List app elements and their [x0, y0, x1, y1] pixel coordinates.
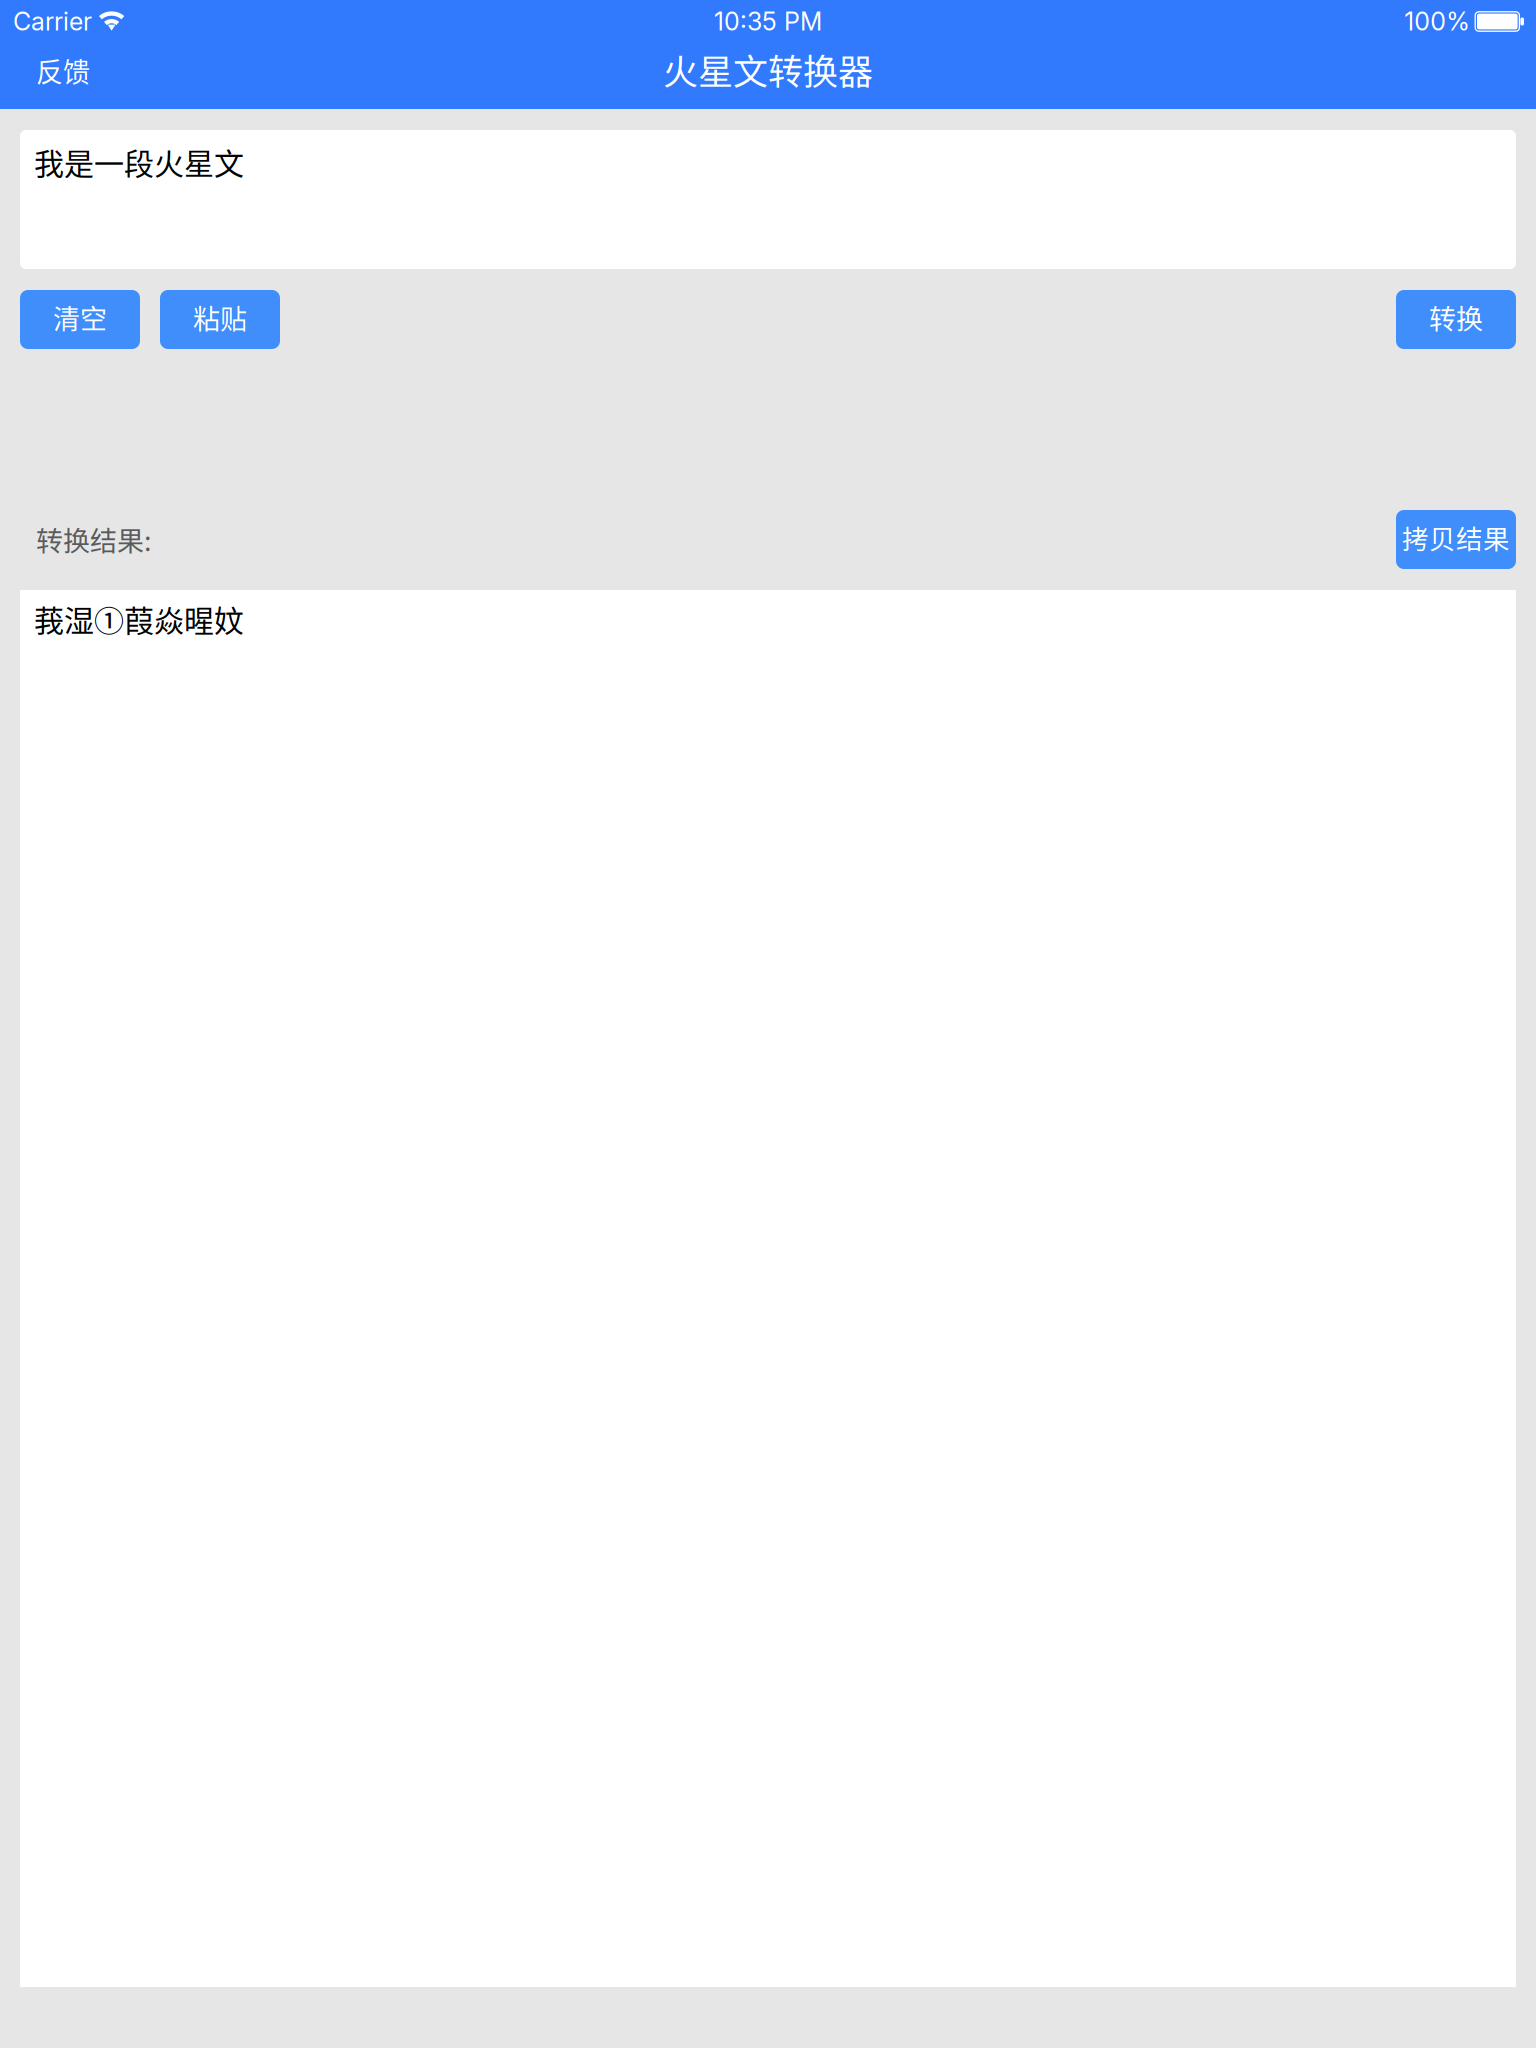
staticText: 莪湿①葭焱暒妏 — [34, 597, 244, 640]
staticText: 火星文转换器 — [663, 44, 873, 95]
button[interactable]: 反馈 — [36, 45, 98, 107]
staticText: 转换结果: — [36, 520, 152, 559]
staticText: Carrier — [13, 6, 92, 37]
button[interactable]: 拷贝结果 — [1396, 510, 1516, 569]
staticText: 拷贝结果 — [1402, 518, 1510, 557]
staticText: 反馈 — [36, 51, 90, 90]
staticText: 粘贴 — [193, 298, 247, 337]
staticText: 100% — [1404, 6, 1470, 37]
staticText: 我是一段火星文 — [34, 140, 244, 183]
staticText: 10:35 PM — [714, 6, 822, 37]
button[interactable]: 清空 — [20, 290, 140, 349]
staticText: 清空 — [53, 298, 107, 337]
button[interactable]: 转换 — [1396, 290, 1516, 349]
staticText: 转换 — [1429, 298, 1483, 337]
button[interactable]: 粘贴 — [160, 290, 280, 349]
